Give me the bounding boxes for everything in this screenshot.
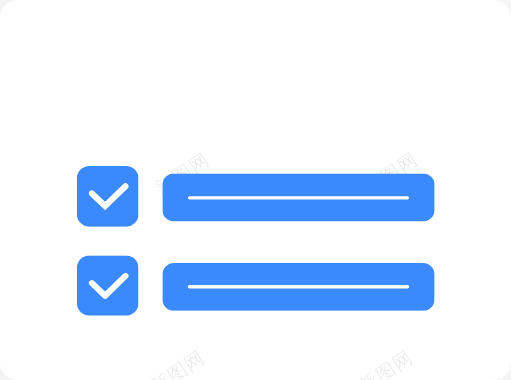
button[interactable]: Task item [162,263,435,311]
button[interactable]: Mark task as done [77,166,138,227]
button[interactable]: Task item [162,173,435,221]
button[interactable]: Mark task as done [77,255,138,316]
